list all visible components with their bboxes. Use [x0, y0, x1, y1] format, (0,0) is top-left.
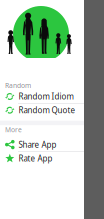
staticText: Random Quote: [19, 105, 76, 115]
button[interactable]: Random Idiom: [0, 90, 84, 103]
button[interactable]: Rate App: [0, 152, 84, 165]
staticText: Rate App: [19, 153, 53, 164]
button[interactable]: Random Quote: [0, 104, 84, 117]
staticText: Random Idiom: [19, 91, 74, 102]
staticText: Share App: [19, 139, 57, 150]
staticText: Random: [5, 81, 31, 90]
button[interactable]: Share App: [0, 138, 84, 151]
staticText: More: [5, 125, 22, 134]
